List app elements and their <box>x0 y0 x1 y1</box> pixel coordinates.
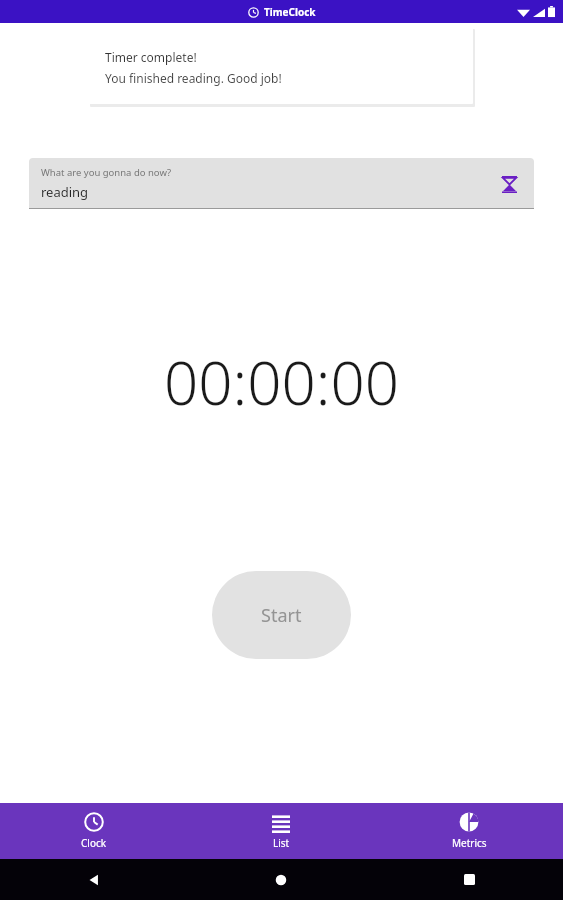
staticText: What are you gonna do now? <box>41 166 172 179</box>
staticText: List <box>273 836 290 850</box>
button[interactable]: List <box>187 803 375 859</box>
button[interactable]: What are you gonna do now? <box>29 158 534 209</box>
button[interactable]: Recent apps <box>375 859 563 900</box>
button[interactable]: Clock <box>0 803 187 859</box>
staticText: Metrics <box>452 836 487 850</box>
staticText: TimeClock <box>264 5 316 19</box>
button[interactable]: Start <box>212 571 351 659</box>
staticText: Timer complete! <box>105 49 197 65</box>
button[interactable]: Home <box>187 859 375 900</box>
staticText: reading <box>41 183 89 201</box>
button[interactable]: Timer complete! <box>89 27 473 104</box>
button[interactable]: Back <box>0 859 187 900</box>
button[interactable]: Set timer <box>496 171 522 197</box>
staticText: You finished reading. Good job! <box>105 70 282 86</box>
staticText: 00:00:00 <box>164 341 399 423</box>
staticText: Clock <box>81 836 107 850</box>
button[interactable]: Metrics <box>375 803 563 859</box>
staticText: Start <box>261 603 302 628</box>
